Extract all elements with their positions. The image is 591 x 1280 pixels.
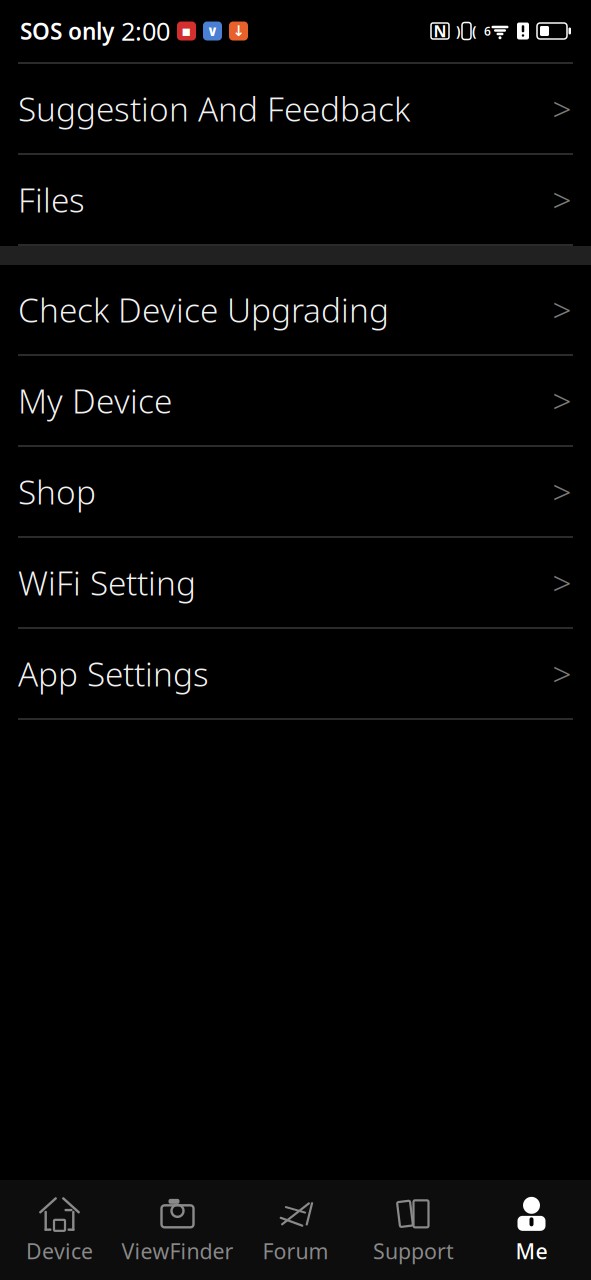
- staticText: Device: [26, 1237, 93, 1265]
- staticText: App Settings: [18, 651, 209, 696]
- button[interactable]: Shop: [0, 447, 591, 538]
- staticText: Suggestion And Feedback: [18, 86, 410, 131]
- staticText: N: [433, 20, 446, 42]
- staticText: ↓: [232, 23, 244, 39]
- staticText: ViewFinder: [121, 1237, 233, 1265]
- button[interactable]: Check Device Upgrading: [0, 265, 591, 356]
- staticText: 2:00: [121, 14, 170, 48]
- staticText: >: [552, 177, 571, 222]
- button[interactable]: Me: [472, 1187, 590, 1273]
- staticText: SOS only: [20, 16, 114, 46]
- staticText: Check Device Upgrading: [18, 287, 389, 332]
- staticText: >: [552, 560, 571, 605]
- staticText: Files: [18, 177, 85, 222]
- staticText: Shop: [18, 469, 96, 514]
- staticText: >: [552, 651, 571, 696]
- staticText: Support: [373, 1237, 454, 1265]
- staticText: >: [552, 86, 571, 131]
- staticText: (: [472, 22, 477, 40]
- staticText: WiFi Setting: [18, 560, 196, 605]
- staticText: My Device: [18, 378, 172, 423]
- staticText: 6: [484, 23, 491, 39]
- button[interactable]: ViewFinder: [118, 1187, 236, 1273]
- staticText: ∨: [206, 23, 218, 39]
- staticText: ▪: [181, 23, 191, 39]
- button[interactable]: Device: [0, 1187, 118, 1273]
- button[interactable]: App Settings: [0, 629, 591, 720]
- staticText: Me: [515, 1237, 547, 1265]
- button[interactable]: Files: [0, 155, 591, 246]
- staticText: Forum: [262, 1237, 328, 1265]
- button[interactable]: WiFi Setting: [0, 538, 591, 629]
- button[interactable]: Support: [354, 1187, 472, 1273]
- staticText: >: [552, 287, 571, 332]
- button[interactable]: My Device: [0, 356, 591, 447]
- staticText: ): [456, 22, 461, 40]
- staticText: >: [552, 378, 571, 423]
- staticText: >: [552, 469, 571, 514]
- button[interactable]: Suggestion And Feedback: [0, 64, 591, 155]
- button[interactable]: Forum: [236, 1187, 354, 1273]
